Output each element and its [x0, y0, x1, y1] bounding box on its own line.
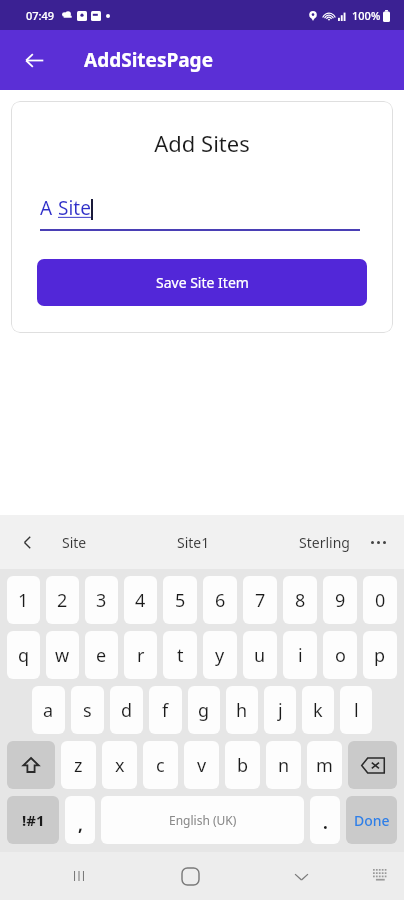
button[interactable]: h: [226, 686, 258, 734]
staticText: Site: [58, 195, 91, 221]
button[interactable]: 1: [7, 576, 40, 624]
button[interactable]: 7: [243, 576, 277, 624]
staticText: 0: [375, 588, 386, 613]
staticText: l: [354, 698, 359, 723]
staticText: f: [162, 698, 169, 723]
button[interactable]: c: [143, 741, 178, 789]
staticText: Save Site Item: [156, 273, 249, 292]
staticText: u: [254, 643, 266, 668]
staticText: Done: [354, 811, 390, 830]
button[interactable]: e: [85, 631, 118, 679]
staticText: c: [156, 753, 165, 778]
button[interactable]: !#1: [7, 796, 59, 844]
staticText: q: [18, 643, 30, 668]
staticText: 2: [57, 588, 68, 613]
button[interactable]: Backspace: [348, 741, 397, 789]
button[interactable]: k: [302, 686, 334, 734]
staticText: 8: [295, 588, 306, 613]
button[interactable]: f: [149, 686, 182, 734]
button[interactable]: u: [243, 631, 277, 679]
button[interactable]: m: [307, 741, 342, 789]
button[interactable]: 4: [124, 576, 157, 624]
staticText: 1: [18, 588, 29, 613]
button[interactable]: Hide keyboard: [278, 853, 324, 899]
staticText: z: [74, 753, 83, 778]
button[interactable]: English (UK): [101, 796, 304, 844]
staticText: 5: [175, 588, 186, 613]
button[interactable]: w: [46, 631, 79, 679]
staticText: j: [278, 698, 283, 723]
staticText: !#1: [22, 810, 45, 830]
button[interactable]: d: [110, 686, 143, 734]
button[interactable]: 8: [283, 576, 317, 624]
button[interactable]: Sterling: [289, 525, 360, 560]
button[interactable]: Previous suggestions: [8, 523, 46, 561]
staticText: y: [215, 643, 225, 668]
staticText: Add Sites: [11, 128, 393, 158]
staticText: 7: [255, 588, 266, 613]
button[interactable]: Recent apps: [56, 853, 102, 899]
staticText: Sterling: [299, 533, 350, 552]
button[interactable]: 2: [46, 576, 79, 624]
staticText: A: [40, 195, 58, 221]
staticText: 07:49: [26, 8, 55, 23]
staticText: x: [115, 753, 125, 778]
button[interactable]: 3: [85, 576, 118, 624]
staticText: d: [121, 698, 133, 723]
button[interactable]: r: [124, 631, 157, 679]
button[interactable]: Site: [52, 525, 97, 560]
button[interactable]: j: [264, 686, 296, 734]
button[interactable]: v: [184, 741, 219, 789]
button[interactable]: y: [203, 631, 237, 679]
button[interactable]: l: [340, 686, 372, 734]
staticText: a: [43, 698, 54, 723]
staticText: m: [316, 753, 333, 778]
staticText: n: [278, 753, 290, 778]
staticText: Site1: [177, 533, 210, 552]
button[interactable]: 0: [363, 576, 397, 624]
staticText: o: [335, 643, 346, 668]
button[interactable]: Site1: [167, 525, 220, 560]
button[interactable]: b: [225, 741, 260, 789]
button[interactable]: 6: [203, 576, 237, 624]
button[interactable]: o: [323, 631, 357, 679]
button[interactable]: Save Site Item: [37, 259, 367, 306]
button[interactable]: Back: [12, 38, 56, 82]
staticText: ,: [78, 813, 83, 836]
staticText: v: [197, 753, 207, 778]
staticText: Site: [62, 533, 87, 552]
staticText: t: [177, 643, 184, 668]
button[interactable]: Keyboard settings: [360, 856, 400, 896]
staticText: r: [137, 643, 145, 668]
staticText: k: [313, 698, 323, 723]
button[interactable]: p: [363, 631, 397, 679]
button[interactable]: ,: [65, 796, 95, 844]
button[interactable]: .: [310, 796, 340, 844]
button[interactable]: Shift: [7, 741, 55, 789]
button[interactable]: s: [71, 686, 104, 734]
button[interactable]: a: [32, 686, 65, 734]
button[interactable]: Home: [167, 853, 213, 899]
button[interactable]: x: [102, 741, 137, 789]
button[interactable]: More options: [360, 524, 396, 560]
staticText: w: [55, 643, 70, 668]
staticText: p: [374, 643, 386, 668]
button[interactable]: t: [163, 631, 197, 679]
button[interactable]: z: [61, 741, 96, 789]
staticText: 3: [96, 588, 107, 613]
button[interactable]: n: [266, 741, 301, 789]
button[interactable]: 9: [323, 576, 357, 624]
staticText: b: [237, 753, 249, 778]
staticText: English (UK): [169, 812, 237, 828]
staticText: 9: [335, 588, 346, 613]
button[interactable]: g: [188, 686, 220, 734]
button[interactable]: i: [283, 631, 317, 679]
staticText: h: [236, 698, 248, 723]
button[interactable]: 5: [163, 576, 197, 624]
staticText: 100%: [352, 8, 381, 23]
button[interactable]: Done: [346, 796, 397, 844]
staticText: AddSitesPage: [84, 47, 213, 73]
staticText: 4: [135, 588, 146, 613]
staticText: i: [298, 643, 303, 668]
button[interactable]: q: [7, 631, 40, 679]
